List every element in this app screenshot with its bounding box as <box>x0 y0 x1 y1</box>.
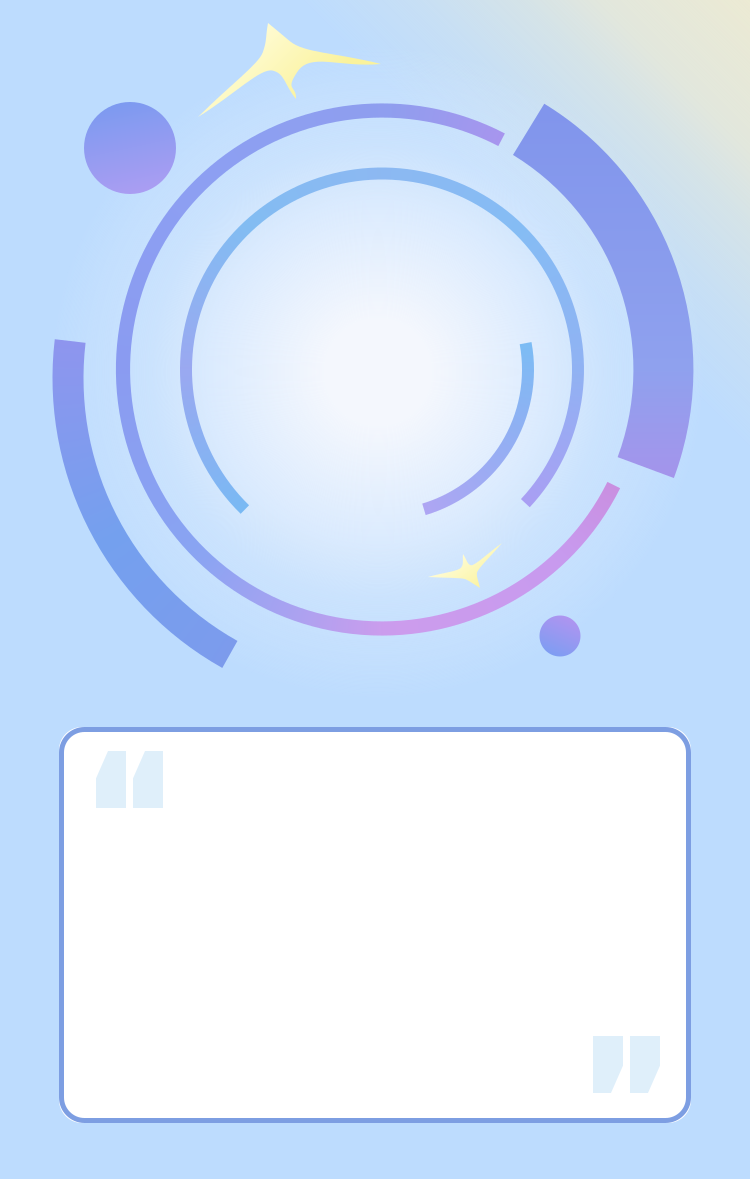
button[interactable]: Quote card <box>59 727 691 1123</box>
